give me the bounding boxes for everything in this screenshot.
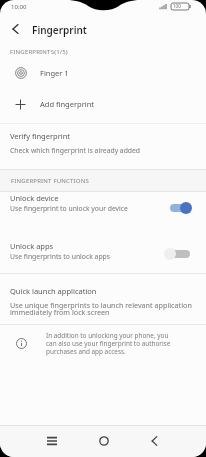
staticText: Add fingerprint (40, 99, 95, 109)
button[interactable] (31, 425, 72, 457)
staticText: Quick launch application (10, 286, 97, 296)
button[interactable] (0, 18, 30, 40)
staticText: Use fingerprints to unlock apps (10, 252, 111, 261)
staticText: 10:00 (11, 3, 27, 11)
staticText: Finger 1 (40, 68, 69, 78)
button[interactable]: Quick launch application (0, 281, 206, 319)
staticText: FINGERPRINT FUNCTIONS (11, 177, 89, 185)
staticText: Verify fingerprint (10, 131, 71, 141)
button[interactable]: Finger 1 (0, 59, 206, 86)
button[interactable]: Verify fingerprint (0, 127, 206, 163)
button[interactable] (83, 425, 124, 457)
staticText: Check which fingerprint is already added (10, 146, 141, 155)
staticText: Use fingerprint to unlock your device (10, 204, 128, 213)
staticText: In addition to unlocking your phone, you… (46, 331, 171, 356)
staticText: 100 (173, 3, 181, 9)
button[interactable] (134, 425, 175, 457)
staticText: FINGERPRINTS(1/5) (10, 48, 68, 56)
button[interactable]: Unlock device (0, 192, 206, 220)
staticText: Unlock apps (10, 241, 54, 251)
staticText: Use unique fingerprints to launch releva… (10, 300, 192, 317)
button[interactable]: Add fingerprint (0, 90, 206, 118)
button[interactable]: Unlock apps (0, 240, 206, 268)
staticText: Unlock device (10, 193, 59, 203)
staticText: Fingerprint (32, 23, 87, 37)
button[interactable] (170, 202, 192, 214)
button[interactable] (164, 248, 190, 260)
